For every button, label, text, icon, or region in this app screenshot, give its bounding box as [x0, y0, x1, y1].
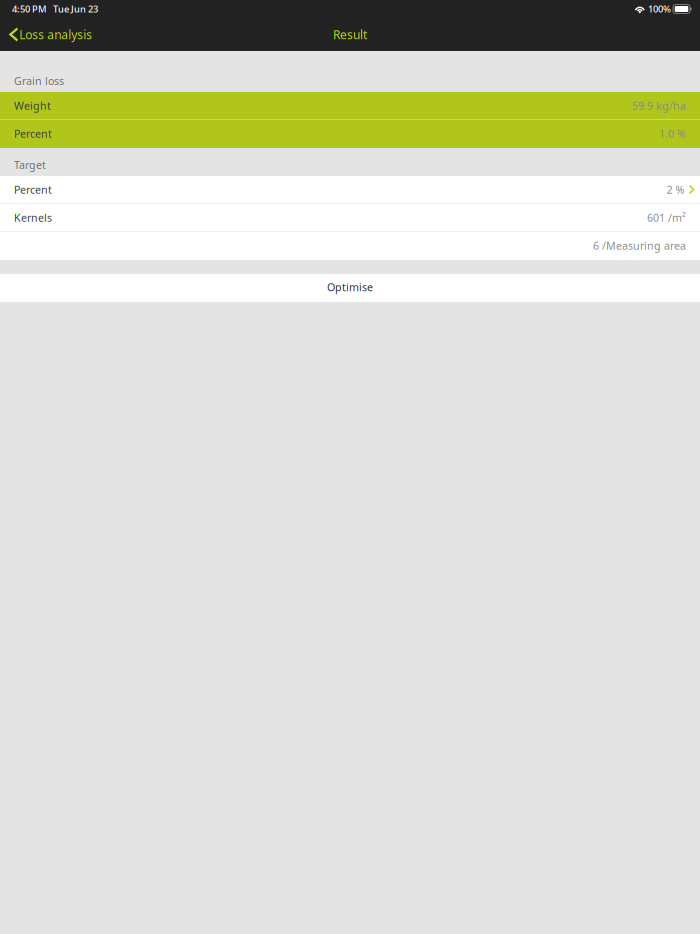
button[interactable]: 6 /Measuring area	[0, 232, 700, 260]
button[interactable]: Loss analysis	[0, 18, 100, 51]
staticText: Grain loss	[14, 74, 64, 88]
button[interactable]: Weight, 59.9 kg/ha	[0, 92, 700, 120]
staticText: Loss analysis	[19, 26, 92, 42]
button[interactable]: Optimise	[0, 274, 700, 302]
staticText: 100%	[648, 3, 671, 15]
button[interactable]: Percent, 1.0 %	[0, 120, 700, 148]
staticText: Percent	[14, 182, 52, 197]
staticText: 59.9 kg/ha	[632, 98, 686, 113]
staticText: 601 /m²	[647, 210, 686, 225]
staticText: 1.0 %	[659, 126, 686, 141]
staticText: Target	[14, 158, 46, 172]
staticText: 6 /Measuring area	[593, 238, 686, 253]
button[interactable]: Percent, 2 %	[0, 176, 700, 204]
staticText: 2 %	[666, 182, 684, 197]
staticText: Result	[333, 26, 367, 42]
staticText: Tue Jun 23	[53, 3, 98, 15]
staticText: Weight	[14, 98, 51, 113]
staticText: Percent	[14, 126, 52, 141]
button[interactable]: Kernels, 601 /m²	[0, 204, 700, 232]
staticText: 4:50 PM	[12, 3, 47, 15]
staticText: Optimise	[327, 280, 373, 294]
staticText: Kernels	[14, 210, 52, 225]
